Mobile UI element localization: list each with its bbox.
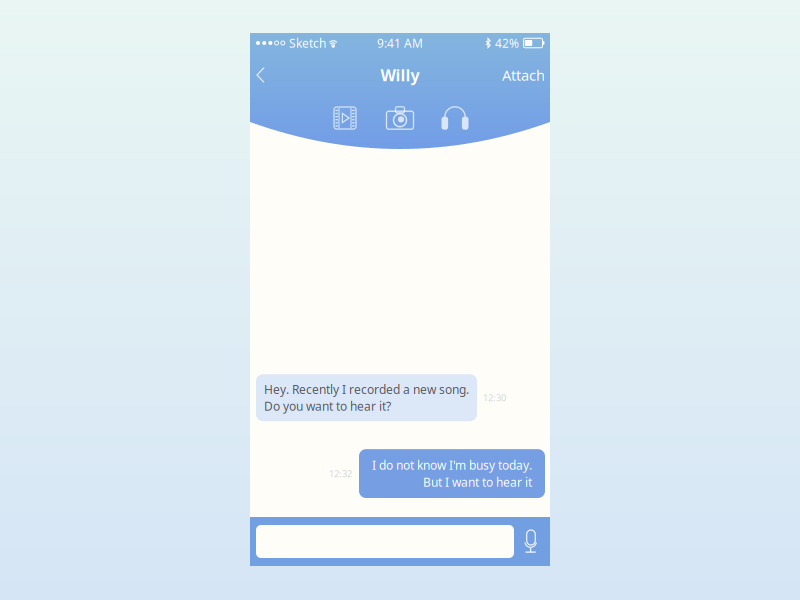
button[interactable]: Video <box>317 103 372 133</box>
staticText: Do you want to hear it? <box>264 398 391 414</box>
staticText: Sketch <box>289 35 326 51</box>
button[interactable]: Attach <box>497 55 550 95</box>
staticText: But I want to hear it <box>423 474 532 490</box>
button[interactable]: Message <box>256 525 514 558</box>
staticText: Hey. Recently I recorded a new song. <box>264 381 469 397</box>
button[interactable]: Camera <box>372 103 427 133</box>
staticText: 12:32 <box>329 467 352 480</box>
staticText: 9:41 AM <box>377 35 423 51</box>
button[interactable]: Audio <box>427 103 482 133</box>
button[interactable]: Back <box>250 57 271 93</box>
staticText: Attach <box>502 65 545 85</box>
staticText: I do not know I'm busy today. <box>372 457 532 473</box>
staticText: 12:30 <box>483 391 506 404</box>
staticText: Willy <box>380 64 419 86</box>
button[interactable]: Record voice message <box>516 521 546 561</box>
staticText: 42% <box>495 35 519 51</box>
